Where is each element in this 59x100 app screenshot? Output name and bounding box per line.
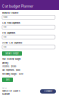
staticText: Your monthly budget xyxy=(2,58,21,60)
staticText: Cat Expenses: $300 xyxy=(2,69,20,71)
staticText: Save xyxy=(5,79,9,81)
staticText: 100 xyxy=(3,46,6,48)
staticText: Vet Expenses xyxy=(2,31,15,34)
staticText: 100 xyxy=(3,26,6,28)
staticText: Listen xyxy=(2,87,7,89)
staticText: Cat Food Expenses xyxy=(2,21,20,24)
staticText: 100 xyxy=(3,36,6,38)
staticText: Number xyxy=(2,93,10,95)
staticText: 1000 xyxy=(3,16,7,18)
button[interactable]: Save xyxy=(2,78,13,82)
staticText: planning: xyxy=(2,62,9,64)
staticText: Monthly Income xyxy=(2,12,18,14)
staticText: Income: $1000 xyxy=(2,65,16,68)
staticText: Search for Lucas's xyxy=(2,90,20,92)
button[interactable]: Calculate Budget xyxy=(2,51,22,56)
staticText: Calculate Budget xyxy=(5,52,19,55)
staticText: Remaining Budget: $700 xyxy=(2,73,23,75)
staticText: LEARN MORE xyxy=(43,90,52,92)
staticText: Cat budget Planner xyxy=(2,4,33,8)
button[interactable]: LEARN MORE xyxy=(40,89,56,94)
staticText: Other Cat Expenses xyxy=(2,41,22,44)
